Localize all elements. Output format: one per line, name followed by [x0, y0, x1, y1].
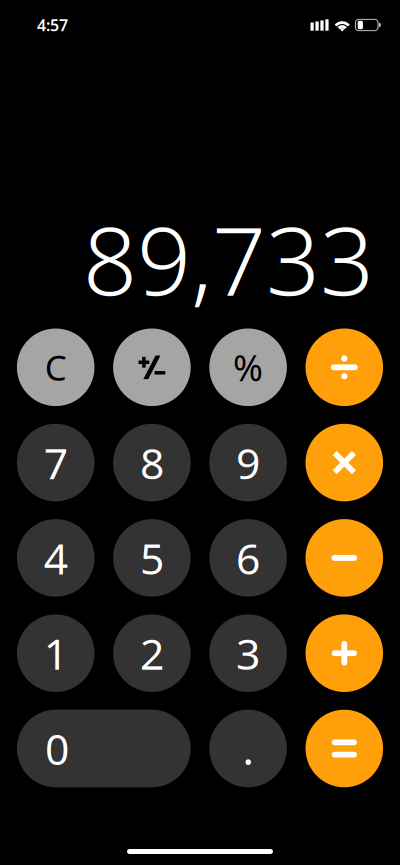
button[interactable]: 4	[17, 519, 94, 597]
button[interactable]: 0	[17, 710, 191, 787]
staticText: 3	[236, 625, 260, 682]
staticText: 89,733	[83, 196, 374, 321]
button[interactable]: Multiply	[305, 424, 383, 501]
staticText: 0	[45, 720, 69, 777]
staticText: 2	[140, 625, 164, 682]
button[interactable]: 2	[113, 614, 191, 692]
staticText: 9	[236, 434, 260, 491]
button[interactable]: Equals	[305, 710, 383, 787]
button[interactable]: 6	[209, 519, 287, 597]
staticText: 4	[44, 530, 68, 586]
button[interactable]: .	[209, 710, 287, 787]
staticText: C	[45, 344, 67, 390]
button[interactable]: C	[17, 328, 94, 406]
button[interactable]: 5	[113, 519, 191, 597]
button[interactable]: 7	[17, 424, 94, 501]
staticText: 8	[140, 434, 164, 491]
staticText: 1	[44, 625, 68, 682]
button[interactable]: 8	[113, 424, 191, 501]
button[interactable]: Plus	[305, 614, 383, 692]
button[interactable]: %	[209, 328, 287, 406]
button[interactable]: 1	[17, 614, 94, 692]
staticText: 5	[140, 530, 164, 586]
staticText: 4:57	[37, 14, 68, 36]
staticText: 6	[236, 530, 260, 586]
button[interactable]: 9	[209, 424, 287, 501]
staticText: %	[233, 343, 263, 391]
button[interactable]: 3	[209, 614, 287, 692]
staticText: .	[243, 720, 254, 777]
staticText: 7	[44, 434, 68, 491]
button[interactable]: Minus	[305, 519, 383, 597]
button[interactable]: Divide	[305, 328, 383, 406]
button[interactable]: Plus minus	[113, 328, 191, 406]
